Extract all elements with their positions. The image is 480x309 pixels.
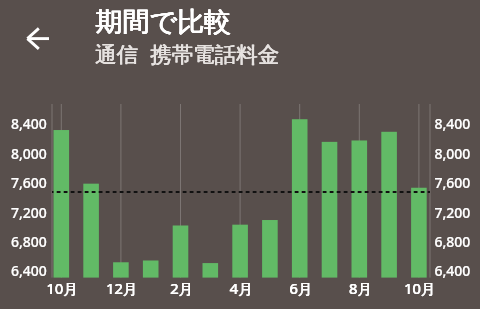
button[interactable]: Back bbox=[14, 15, 62, 63]
